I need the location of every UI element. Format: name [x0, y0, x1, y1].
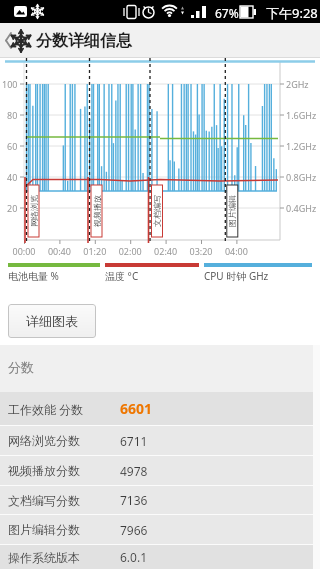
button[interactable]: 详细图表 [8, 304, 96, 338]
staticText: 视频播放分数 [8, 463, 80, 478]
button[interactable]: 文档编写分数 [0, 486, 320, 514]
staticText: 文档编写分数 [8, 493, 80, 508]
staticText: 7966 [120, 522, 148, 538]
button[interactable]: 网络浏览分数 [0, 426, 320, 455]
staticText: 67% [215, 5, 239, 21]
staticText: 下午9:28 [266, 4, 318, 22]
staticText: 4978 [120, 463, 148, 479]
staticText: 7136 [120, 492, 148, 508]
staticText: 详细图表 [26, 313, 78, 329]
staticText: 图片编辑分数 [8, 522, 80, 537]
button[interactable]: 工作效能 分数 [0, 392, 320, 425]
staticText: 操作系统版本 [8, 550, 80, 565]
button[interactable]: 图片编辑分数 [0, 515, 320, 544]
button[interactable] [0, 23, 34, 58]
staticText: 分数 [8, 359, 34, 375]
button[interactable]: 视频播放分数 [0, 456, 320, 485]
staticText: 6.0.1 [120, 549, 148, 565]
staticText: 6601 [120, 399, 153, 418]
staticText: 网络浏览分数 [8, 433, 80, 448]
staticText: 6711 [120, 433, 148, 449]
staticText: 分数详细信息 [36, 31, 132, 51]
staticText: 工作效能 分数 [8, 401, 84, 417]
